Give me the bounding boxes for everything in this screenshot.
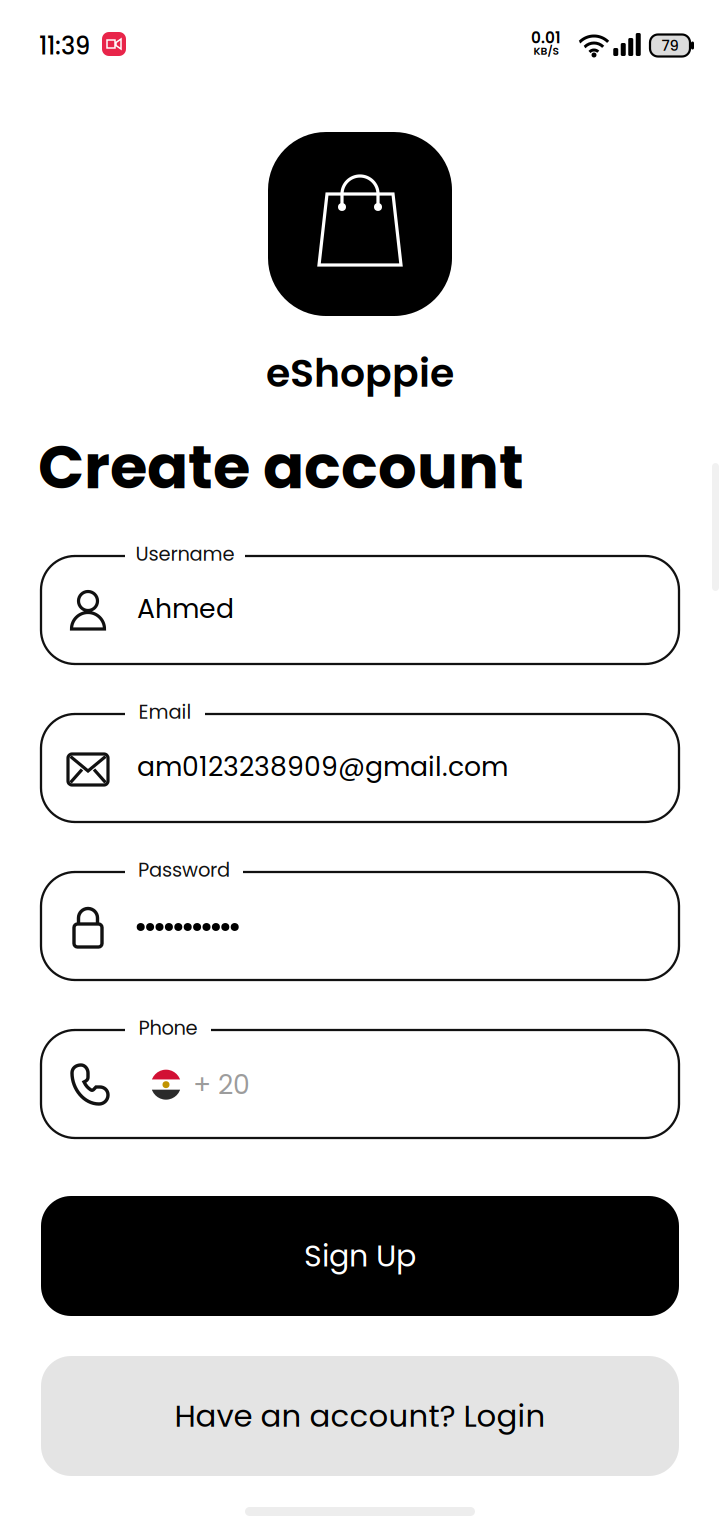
staticText: Create account [38,424,524,509]
staticText: 0.01 [531,27,561,49]
button[interactable]: Username [41,556,679,664]
button[interactable]: Have an account? Login [41,1356,679,1476]
button[interactable]: Sign Up [41,1196,679,1316]
staticText: Username [135,540,234,568]
button[interactable]: Phone [41,1030,679,1138]
staticText: Password [138,856,230,884]
staticText: eShoppie [266,345,454,401]
staticText: 79 [661,35,678,56]
staticText: Sign Up [304,1235,416,1277]
staticText: am0123238909@gmail.com [137,748,508,785]
staticText: 11:39 [39,29,90,63]
button[interactable]: Password [41,872,679,980]
staticText: Phone [138,1014,197,1042]
staticText: + 20 [193,1066,250,1103]
staticText: Email [138,698,191,726]
button[interactable]: Email [41,714,679,822]
staticText: Ahmed [137,590,234,627]
staticText: KB/S [533,43,558,58]
staticText: Have an account? Login [174,1394,545,1437]
